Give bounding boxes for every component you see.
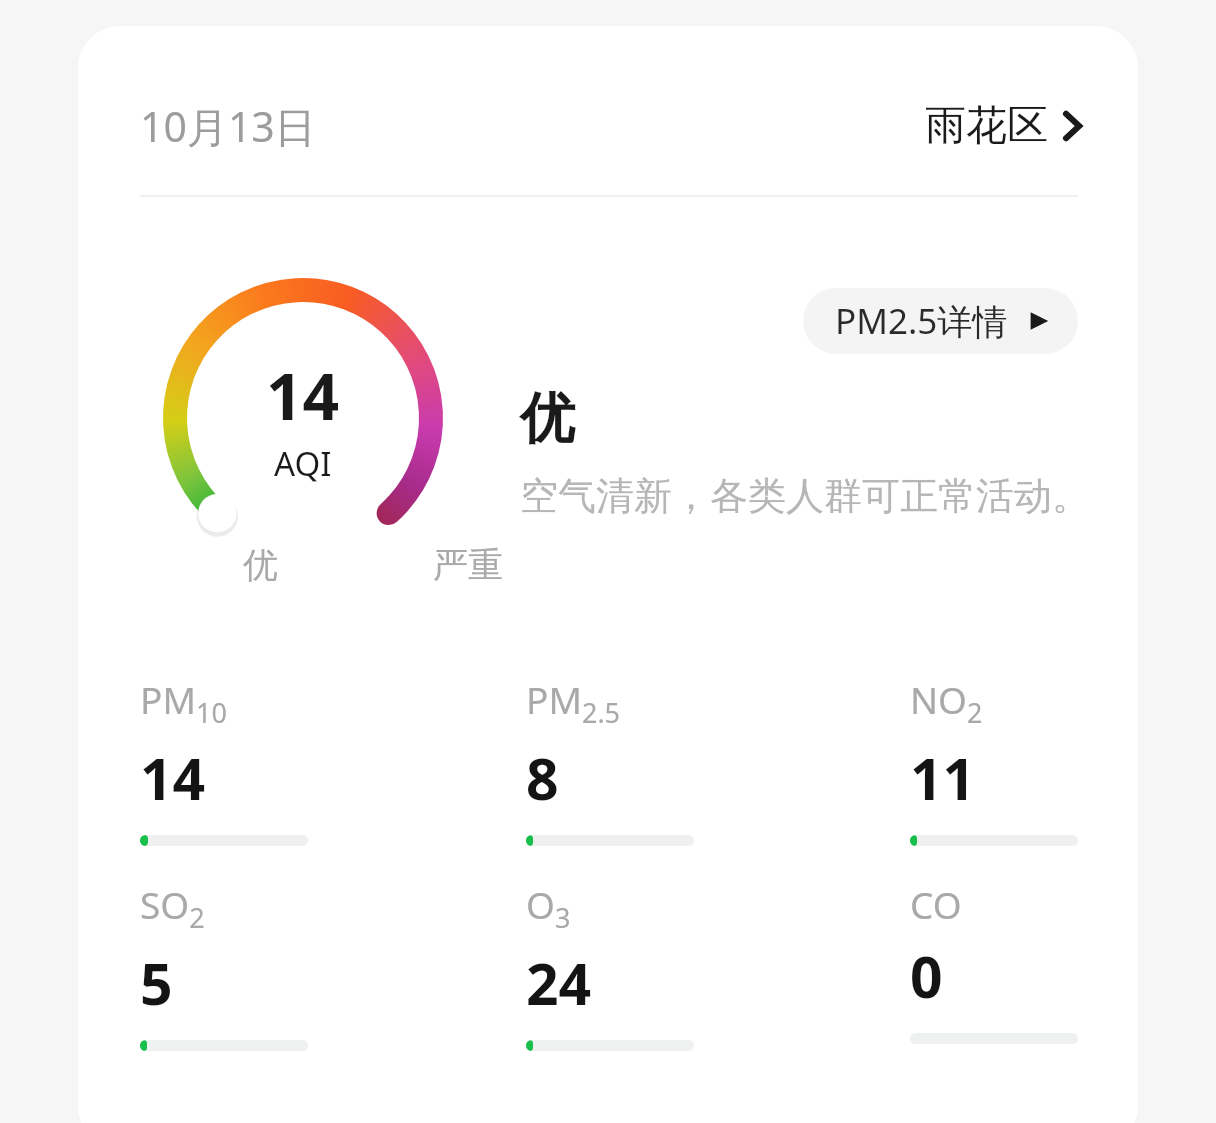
staticText: 8: [526, 739, 559, 817]
staticText: 雨花区: [925, 100, 1048, 152]
staticText: 5: [140, 944, 173, 1022]
staticText: 14: [140, 739, 206, 817]
button[interactable]: O3: [526, 879, 826, 1051]
staticText: PM2.5详情: [835, 297, 1008, 345]
staticText: PM2.5: [526, 674, 621, 731]
button[interactable]: CO: [910, 879, 1138, 1044]
staticText: 0: [910, 937, 943, 1015]
staticText: 优: [243, 543, 278, 587]
button[interactable]: NO2: [910, 674, 1138, 846]
staticText: 11: [910, 739, 976, 817]
staticText: 空气清新，各类人群可正常活动。: [520, 472, 1090, 520]
staticText: 14: [266, 352, 340, 439]
staticText: NO2: [910, 674, 983, 731]
button[interactable]: PM2.5: [526, 674, 826, 846]
button[interactable]: PM10: [140, 674, 440, 846]
staticText: 10月13日: [140, 98, 316, 154]
staticText: CO: [910, 879, 962, 929]
staticText: AQI: [274, 441, 332, 486]
staticText: PM10: [140, 674, 227, 731]
staticText: O3: [526, 879, 571, 936]
button[interactable]: 雨花区: [919, 94, 1088, 158]
staticText: 优: [520, 384, 575, 453]
staticText: 24: [526, 944, 592, 1022]
button[interactable]: PM2.5详情: [803, 288, 1078, 354]
other: Change location: [1062, 108, 1082, 144]
staticText: SO2: [140, 879, 205, 936]
button[interactable]: SO2: [140, 879, 440, 1051]
staticText: 严重: [433, 543, 503, 587]
